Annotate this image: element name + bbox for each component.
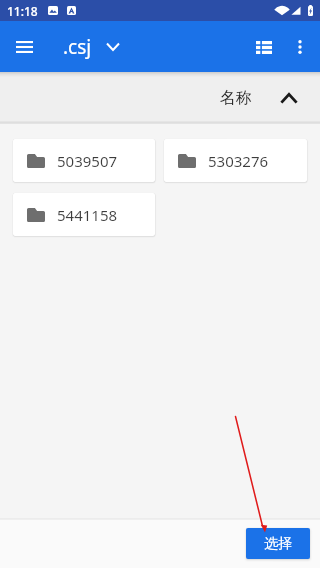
staticText: 5039507 [57, 151, 118, 171]
button[interactable]: More options [280, 27, 320, 67]
button[interactable]: .csj [63, 21, 119, 72]
button[interactable]: List view [242, 25, 286, 69]
button[interactable]: 5039507 [13, 139, 155, 182]
button[interactable]: Menu [0, 23, 48, 71]
button[interactable]: 名称 [202, 72, 320, 124]
staticText: 选择 [264, 535, 292, 553]
staticText: 11:18 [7, 3, 38, 19]
staticText: 5303276 [208, 151, 269, 171]
button[interactable]: 选择 [246, 528, 310, 559]
staticText: 名称 [220, 88, 252, 108]
button[interactable]: 5303276 [164, 139, 307, 182]
button[interactable]: 5441158 [13, 193, 155, 236]
staticText: .csj [63, 34, 92, 60]
staticText: 5441158 [57, 205, 118, 225]
